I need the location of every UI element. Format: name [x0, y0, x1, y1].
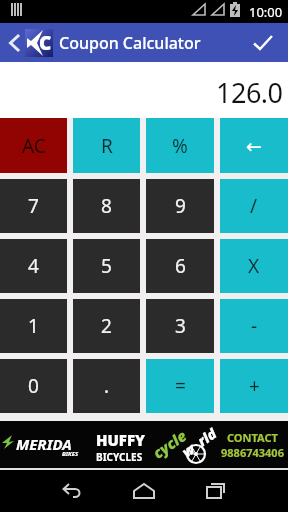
button[interactable]: .: [73, 359, 140, 413]
staticText: HUFFY: [96, 430, 145, 450]
button[interactable]: ←: [220, 118, 288, 173]
staticText: 5: [101, 253, 112, 279]
staticText: BIKES: [62, 450, 79, 458]
button[interactable]: 2: [73, 299, 140, 353]
button[interactable]: 0: [0, 359, 67, 413]
button[interactable]: =: [146, 359, 214, 413]
staticText: 8: [101, 193, 112, 219]
button[interactable]: AC: [0, 118, 67, 173]
button[interactable]: [48, 471, 96, 511]
button[interactable]: 9: [146, 179, 214, 233]
button[interactable]: 3: [146, 299, 214, 353]
staticText: w rld: [178, 424, 220, 461]
button[interactable]: [0, 35, 18, 51]
staticText: -: [251, 313, 258, 339]
staticText: =: [175, 373, 186, 399]
staticText: R: [101, 133, 113, 159]
staticText: /: [250, 193, 258, 219]
button[interactable]: %: [146, 118, 214, 173]
staticText: 1: [28, 313, 39, 339]
button[interactable]: MERIDA: [0, 421, 288, 468]
staticText: .: [104, 373, 110, 399]
button[interactable]: [253, 35, 273, 50]
button[interactable]: 8: [73, 179, 140, 233]
button[interactable]: -: [220, 299, 288, 353]
staticText: Coupon Calculator: [59, 32, 201, 54]
button[interactable]: 6: [146, 239, 214, 293]
staticText: 6: [175, 253, 186, 279]
staticText: 4: [28, 253, 39, 279]
staticText: %: [172, 133, 188, 159]
staticText: 7: [28, 193, 39, 219]
staticText: ←: [246, 135, 262, 157]
staticText: 9: [175, 193, 186, 219]
button[interactable]: 4: [0, 239, 67, 293]
button[interactable]: [120, 471, 168, 511]
staticText: MERIDA: [16, 434, 72, 454]
staticText: CONTACT: [227, 430, 278, 445]
button[interactable]: X: [220, 239, 288, 293]
staticText: X: [248, 253, 260, 279]
staticText: +: [249, 373, 260, 399]
staticText: cycle: [149, 425, 190, 463]
button[interactable]: +: [220, 359, 288, 413]
staticText: 10:00: [249, 3, 283, 21]
button[interactable]: 1: [0, 299, 67, 353]
button[interactable]: R: [73, 118, 140, 173]
staticText: 126.0: [216, 74, 283, 111]
staticText: 2: [101, 313, 112, 339]
staticText: 3: [175, 313, 186, 339]
staticText: BICYCLES: [96, 450, 143, 464]
button[interactable]: [192, 471, 240, 511]
staticText: 9886743406: [221, 445, 284, 460]
button[interactable]: /: [220, 179, 288, 233]
staticText: 0: [28, 373, 39, 399]
staticText: C: [39, 30, 52, 56]
button[interactable]: 7: [0, 179, 67, 233]
staticText: AC: [22, 133, 46, 159]
button[interactable]: 5: [73, 239, 140, 293]
